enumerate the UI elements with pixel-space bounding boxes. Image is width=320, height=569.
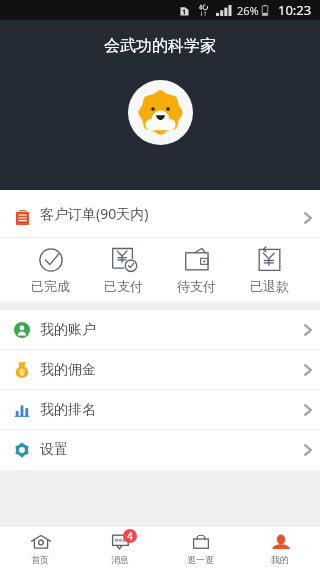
staticText: 我的排名 (40, 401, 96, 419)
button[interactable]: 我的账户 (0, 310, 320, 350)
button[interactable]: Completed orders (14, 238, 87, 301)
button[interactable]: 设置 (0, 430, 320, 470)
button[interactable]: 客户订单(90天内) (0, 190, 320, 237)
staticText: 已完成 (31, 278, 70, 294)
staticText: 逛一逛 (187, 554, 214, 565)
button[interactable]: Paid orders (87, 238, 160, 301)
staticText: 客户订单(90天内) (40, 204, 149, 223)
button[interactable]: Refunded orders (233, 238, 306, 301)
button[interactable]: Browse (160, 527, 240, 569)
staticText: 会武功的科学家 (104, 36, 216, 56)
button[interactable]: Profile avatar (128, 80, 193, 145)
staticText: 消息 (111, 554, 129, 565)
staticText: 待支付 (177, 278, 216, 294)
button[interactable]: Pending payment (160, 238, 233, 301)
staticText: 我的 (271, 554, 289, 565)
staticText: 首页 (31, 554, 49, 565)
staticText: 已支付 (104, 278, 143, 294)
staticText: 设置 (40, 441, 68, 459)
button[interactable]: Profile (240, 527, 320, 569)
button[interactable]: Home (0, 527, 80, 569)
staticText: 已退款 (250, 278, 289, 294)
button[interactable]: Messages (80, 527, 160, 569)
button[interactable]: 我的佣金 (0, 350, 320, 390)
button[interactable]: 我的排名 (0, 390, 320, 430)
staticText: 10:23 (278, 1, 312, 19)
staticText: 4 (127, 529, 133, 543)
staticText: 我的佣金 (40, 361, 96, 379)
staticText: 26% (237, 3, 259, 18)
staticText: 我的账户 (40, 321, 96, 339)
